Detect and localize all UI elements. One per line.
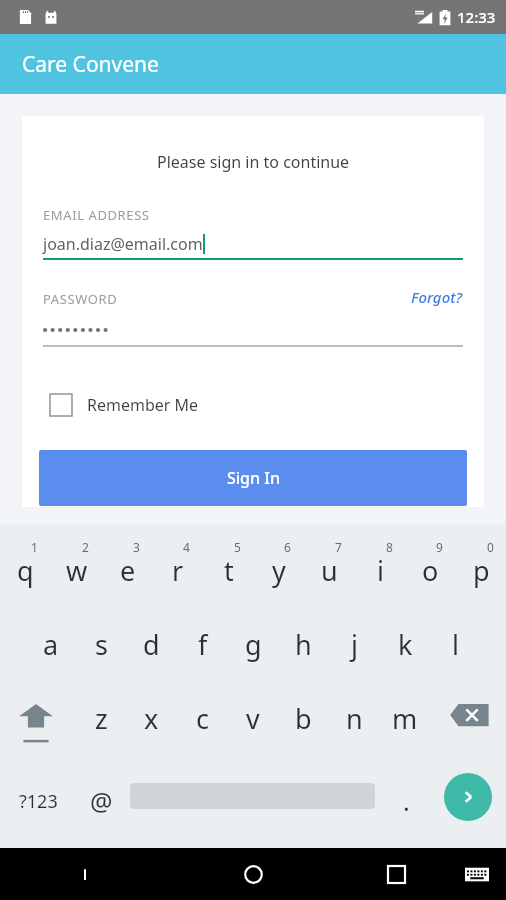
button[interactable]: f bbox=[177, 620, 228, 682]
button[interactable]: l bbox=[430, 620, 481, 682]
staticText: @ bbox=[90, 784, 113, 818]
button[interactable]: 6 bbox=[253, 530, 304, 600]
button[interactable]: joan.diaz@email.com bbox=[43, 228, 463, 260]
staticText: t bbox=[224, 552, 234, 589]
staticText: PASSWORD bbox=[43, 290, 118, 308]
staticText: p bbox=[473, 552, 490, 589]
button[interactable]: 5 bbox=[203, 530, 254, 600]
button[interactable]: 1 bbox=[0, 530, 51, 600]
staticText: n bbox=[346, 700, 363, 737]
button[interactable]: Home bbox=[223, 848, 283, 900]
button[interactable]: m bbox=[379, 694, 430, 756]
staticText: h bbox=[295, 626, 312, 663]
button[interactable]: 8 bbox=[355, 530, 406, 600]
staticText: 12:33 bbox=[457, 7, 496, 27]
button[interactable]: 4 bbox=[152, 530, 203, 600]
button[interactable]: Forgot? bbox=[407, 284, 463, 310]
staticText: 8 bbox=[386, 539, 393, 555]
button[interactable]: d bbox=[126, 620, 177, 682]
staticText: a bbox=[43, 626, 59, 663]
button[interactable]: Enter bbox=[444, 773, 492, 821]
button[interactable]: s bbox=[76, 620, 127, 682]
staticText: q bbox=[17, 552, 34, 589]
staticText: c bbox=[196, 700, 209, 737]
button[interactable]: Switch keyboard bbox=[452, 848, 502, 900]
staticText: v bbox=[246, 700, 260, 737]
staticText: l bbox=[452, 626, 459, 663]
button[interactable]: 3 bbox=[102, 530, 153, 600]
staticText: b bbox=[295, 700, 312, 737]
button[interactable]: 7 bbox=[304, 530, 355, 600]
staticText: 0 bbox=[487, 539, 494, 555]
button[interactable]: 9 bbox=[405, 530, 456, 600]
staticText: 7 bbox=[335, 539, 342, 555]
button[interactable]: z bbox=[76, 694, 127, 756]
button[interactable]: @ bbox=[76, 772, 126, 830]
staticText: 2 bbox=[82, 539, 89, 555]
staticText: s bbox=[95, 626, 108, 663]
staticText: ?123 bbox=[19, 789, 58, 814]
staticText: o bbox=[422, 552, 439, 589]
button[interactable]: . bbox=[385, 772, 427, 830]
button[interactable]: a bbox=[25, 620, 76, 682]
button[interactable]: 2 bbox=[51, 530, 102, 600]
button[interactable]: ?123 bbox=[8, 772, 68, 830]
button[interactable]: b bbox=[278, 694, 329, 756]
staticText: y bbox=[272, 552, 286, 589]
staticText: 4 bbox=[183, 539, 190, 555]
button[interactable]: 0 bbox=[456, 530, 506, 600]
button[interactable]: Remember Me bbox=[50, 388, 199, 422]
staticText: joan.diaz@email.com bbox=[43, 233, 203, 255]
staticText: EMAIL ADDRESS bbox=[43, 206, 150, 224]
staticText: 9 bbox=[436, 539, 443, 555]
staticText: 1 bbox=[31, 539, 38, 555]
staticText: Please sign in to continue bbox=[157, 151, 350, 173]
button[interactable]: h bbox=[278, 620, 329, 682]
staticText: x bbox=[144, 700, 159, 737]
staticText: f bbox=[198, 626, 208, 663]
staticText: i bbox=[377, 552, 384, 589]
staticText: Remember Me bbox=[87, 394, 199, 416]
staticText: 6 bbox=[284, 539, 291, 555]
button[interactable]: k bbox=[380, 620, 431, 682]
staticText: Care Convene bbox=[22, 50, 159, 79]
staticText: w bbox=[66, 552, 88, 589]
button[interactable]: j bbox=[329, 620, 380, 682]
button[interactable]: Recents bbox=[366, 848, 426, 900]
staticText: d bbox=[143, 626, 160, 663]
staticText: . bbox=[403, 784, 410, 818]
staticText: Forgot? bbox=[411, 287, 463, 307]
staticText: k bbox=[398, 626, 413, 663]
staticText: 5 bbox=[234, 539, 241, 555]
button[interactable]: g bbox=[228, 620, 279, 682]
staticText: e bbox=[120, 552, 136, 589]
staticText: z bbox=[95, 700, 108, 737]
button[interactable]: x bbox=[126, 694, 177, 756]
button[interactable]: Backspace bbox=[446, 694, 498, 756]
button[interactable]: n bbox=[329, 694, 380, 756]
staticText: m bbox=[392, 700, 418, 737]
staticText: j bbox=[351, 626, 358, 663]
staticText: u bbox=[321, 552, 338, 589]
button[interactable]: Shift bbox=[8, 694, 64, 756]
button[interactable]: Sign In bbox=[39, 450, 467, 506]
staticText: r bbox=[172, 552, 184, 589]
staticText: g bbox=[245, 626, 262, 663]
staticText: 3 bbox=[133, 539, 140, 555]
staticText: Sign In bbox=[227, 467, 280, 489]
button[interactable] bbox=[43, 314, 463, 346]
button[interactable]: v bbox=[227, 694, 278, 756]
button[interactable]: c bbox=[177, 694, 228, 756]
